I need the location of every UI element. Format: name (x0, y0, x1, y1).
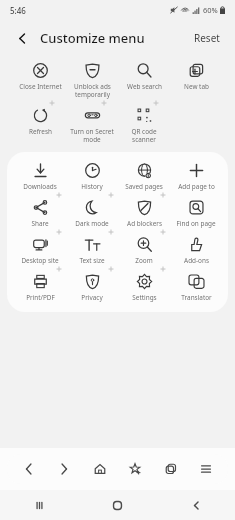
button[interactable]: Turn on Secret mode (66, 107, 118, 144)
button[interactable]: Recents (23, 490, 55, 520)
button[interactable]: Unblock ads temporarily (66, 62, 118, 99)
button[interactable]: Close Internet (14, 62, 66, 91)
staticText: Turn on Secret mode (70, 127, 114, 144)
button[interactable]: QR code scanner (118, 107, 170, 144)
button[interactable]: History (66, 162, 118, 191)
staticText: Web search (127, 82, 162, 91)
button[interactable]: Reset (191, 28, 223, 48)
staticText: History (81, 182, 103, 191)
button[interactable]: Ad blockers (118, 199, 170, 228)
staticText: Ad blockers (127, 219, 162, 228)
button[interactable]: Zoom (118, 236, 170, 265)
staticText: Zoom (135, 256, 153, 265)
button[interactable]: Back (15, 455, 43, 483)
button[interactable]: Share (14, 199, 66, 228)
button[interactable]: Dark mode (66, 199, 118, 228)
button[interactable]: Settings (118, 273, 170, 302)
staticText: Translator (181, 293, 212, 302)
staticText: New tab (184, 82, 209, 91)
button[interactable]: Web search (118, 62, 170, 91)
staticText: 60% (203, 5, 218, 15)
button[interactable]: Translator (170, 273, 222, 302)
button[interactable]: Back (12, 28, 32, 48)
button[interactable]: Downloads (14, 162, 66, 191)
button[interactable]: Print/PDF (14, 273, 66, 302)
button[interactable]: New tab (170, 62, 222, 91)
button[interactable]: Forward (50, 455, 78, 483)
staticText: Print/PDF (26, 293, 55, 302)
button[interactable]: Find on page (170, 199, 222, 228)
button[interactable]: Tabs (157, 455, 185, 483)
button[interactable]: Refresh (14, 107, 66, 136)
button[interactable]: Add-ons (170, 236, 222, 265)
button[interactable]: Home (86, 455, 114, 483)
staticText: Share (31, 219, 49, 228)
staticText: Add page to (178, 182, 215, 191)
staticText: Settings (132, 293, 157, 302)
staticText: Customize menu (40, 29, 145, 47)
staticText: Unblock ads temporarily (74, 82, 111, 99)
staticText: Close Internet (19, 82, 62, 91)
button[interactable]: Add page to (170, 162, 222, 191)
button[interactable]: Text size (66, 236, 118, 265)
button[interactable]: Back (180, 490, 212, 520)
staticText: Find on page (176, 219, 216, 228)
staticText: QR code scanner (131, 127, 157, 144)
staticText: Desktop site (21, 256, 59, 265)
staticText: Downloads (23, 182, 57, 191)
button[interactable]: Saved pages (118, 162, 170, 191)
button[interactable]: Bookmarks (121, 455, 149, 483)
staticText: Saved pages (125, 182, 163, 191)
button[interactable]: Desktop site (14, 236, 66, 265)
button[interactable]: Menu (192, 455, 220, 483)
staticText: Refresh (29, 127, 52, 136)
staticText: Privacy (81, 293, 103, 302)
staticText: Reset (194, 31, 220, 45)
button[interactable]: Privacy (66, 273, 118, 302)
button[interactable]: Home (101, 490, 133, 520)
staticText: Text size (79, 256, 105, 265)
staticText: Dark mode (75, 219, 109, 228)
staticText: 5:46 (10, 5, 26, 16)
staticText: Add-ons (184, 256, 209, 265)
